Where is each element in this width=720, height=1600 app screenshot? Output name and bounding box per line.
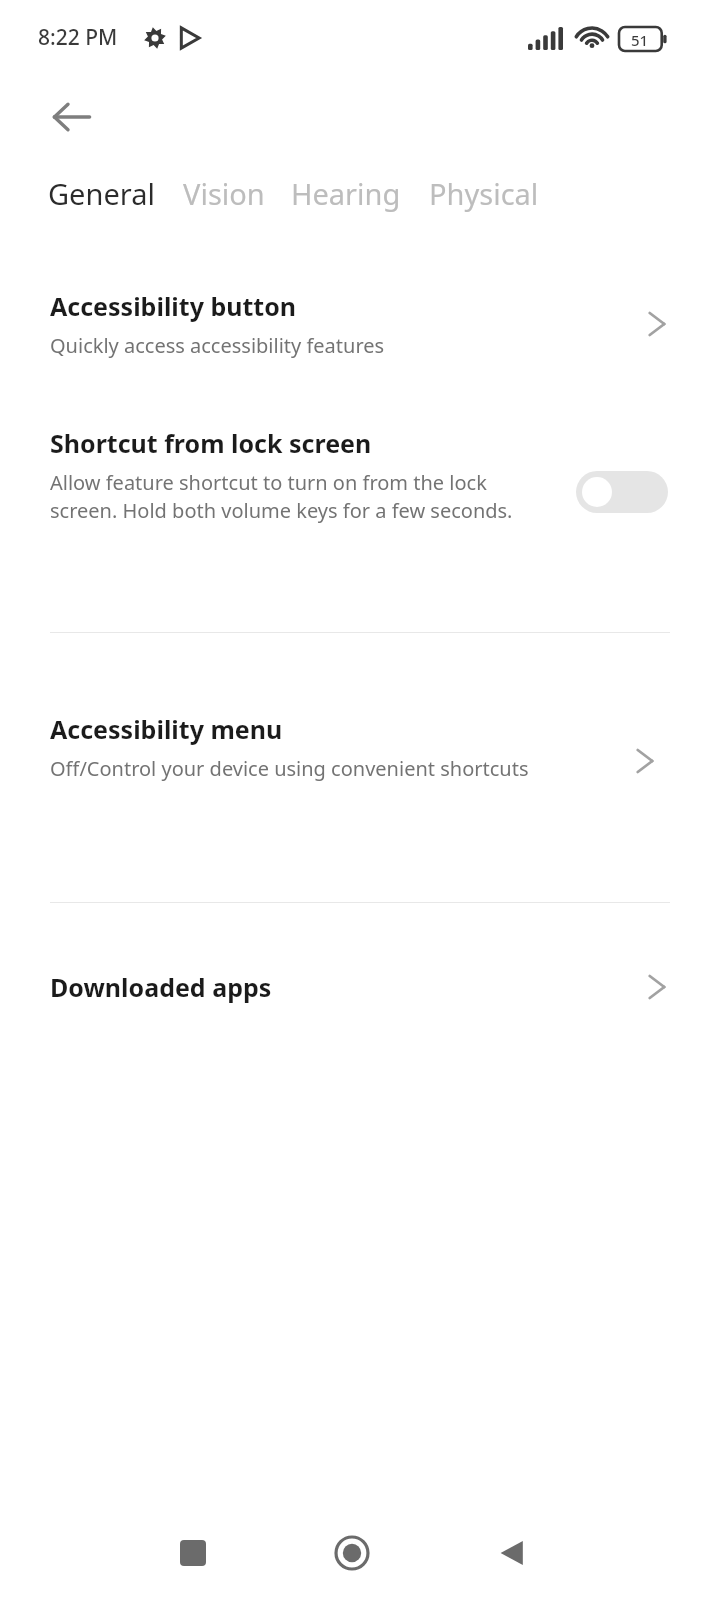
staticText: Shortcut from lock screen	[50, 426, 372, 460]
button[interactable]: Vision	[183, 174, 265, 213]
staticText: Off/Control your device using convenient…	[50, 755, 529, 782]
button[interactable]: Recent apps	[157, 1517, 229, 1589]
button[interactable]: Downloaded apps	[0, 940, 720, 1034]
button[interactable]: Home	[316, 1517, 388, 1589]
staticText: General	[48, 174, 155, 213]
staticText: Accessibility menu	[50, 712, 283, 746]
staticText: Quickly access accessibility features	[50, 332, 385, 359]
button[interactable]: Back	[36, 81, 108, 153]
staticText: 8:22 PM	[38, 23, 118, 52]
button[interactable]: Physical	[429, 174, 539, 213]
button[interactable]: Accessibility menu	[0, 692, 720, 832]
button[interactable]: Shortcut from lock screen toggle	[576, 471, 668, 513]
staticText: 51	[631, 30, 649, 50]
staticText: Hearing	[291, 174, 401, 213]
button[interactable]: Accessibility button	[0, 270, 720, 378]
button[interactable]: Back	[476, 1517, 548, 1589]
staticText: Allow feature shortcut to turn on from t…	[50, 469, 530, 524]
staticText: Physical	[429, 174, 539, 213]
staticText: Accessibility button	[50, 289, 297, 323]
button[interactable]: Hearing	[291, 174, 401, 213]
staticText: Downloaded apps	[50, 970, 272, 1004]
staticText: Vision	[183, 174, 265, 213]
button[interactable]: Shortcut from lock screen	[0, 408, 720, 578]
button[interactable]: General	[48, 174, 155, 213]
